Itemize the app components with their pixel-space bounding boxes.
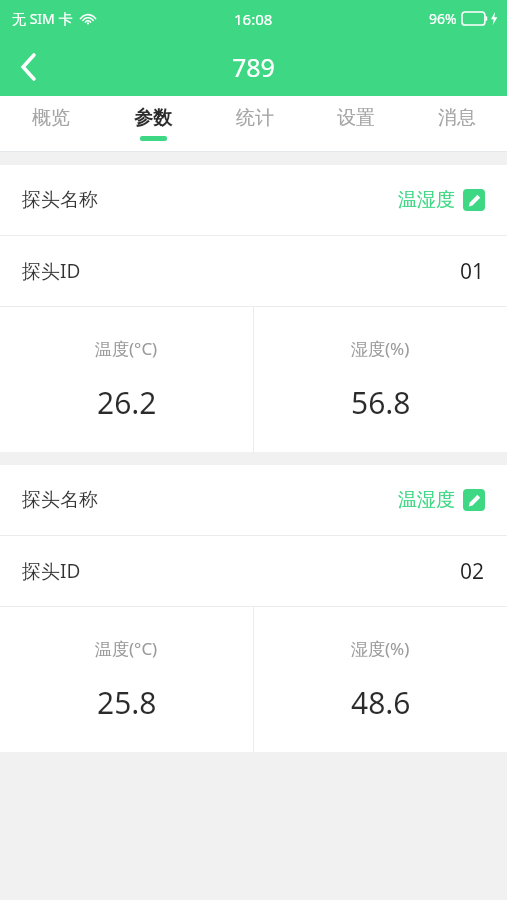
button[interactable]: 概览 xyxy=(0,96,102,151)
staticText: 湿度(%) xyxy=(351,337,410,360)
button[interactable]: 温度(°C) xyxy=(0,607,253,752)
button[interactable]: 探头名称 xyxy=(0,165,507,235)
other: Edit xyxy=(463,489,485,511)
button[interactable]: 温度(°C) xyxy=(0,307,253,452)
staticText: 温度(°C) xyxy=(95,337,158,360)
button[interactable]: 湿度(%) xyxy=(254,607,507,752)
staticText: 温湿度 xyxy=(398,188,455,212)
staticText: 概览 xyxy=(32,106,70,130)
button[interactable]: 探头ID xyxy=(0,536,507,606)
button[interactable]: 参数 xyxy=(102,96,204,151)
staticText: 26.2 xyxy=(97,382,157,423)
staticText: 56.8 xyxy=(351,382,411,423)
staticText: 01 xyxy=(460,257,485,286)
staticText: 48.6 xyxy=(351,682,411,723)
button[interactable]: 湿度(%) xyxy=(254,307,507,452)
staticText: 参数 xyxy=(134,106,172,130)
button[interactable]: 探头名称 xyxy=(0,465,507,535)
staticText: 96% xyxy=(429,9,457,28)
button[interactable]: 统计 xyxy=(204,96,305,151)
staticText: 探头名称 xyxy=(22,188,98,212)
button[interactable]: 消息 xyxy=(406,96,507,151)
staticText: 16:08 xyxy=(234,9,273,29)
staticText: 湿度(%) xyxy=(351,637,410,660)
staticText: 探头ID xyxy=(22,558,81,584)
staticText: 温湿度 xyxy=(398,488,455,512)
staticText: 无 SIM 卡 xyxy=(12,9,73,28)
staticText: 789 xyxy=(232,50,275,84)
button[interactable]: 探头ID xyxy=(0,236,507,306)
staticText: 25.8 xyxy=(97,682,157,723)
staticText: 设置 xyxy=(337,106,375,130)
staticText: 温度(°C) xyxy=(95,637,158,660)
button[interactable]: Back xyxy=(0,39,56,95)
staticText: 统计 xyxy=(236,106,274,130)
button[interactable]: 设置 xyxy=(305,96,406,151)
staticText: 探头名称 xyxy=(22,488,98,512)
other: Edit xyxy=(463,189,485,211)
staticText: 消息 xyxy=(438,106,476,130)
staticText: 02 xyxy=(460,557,485,586)
staticText: 探头ID xyxy=(22,258,81,284)
